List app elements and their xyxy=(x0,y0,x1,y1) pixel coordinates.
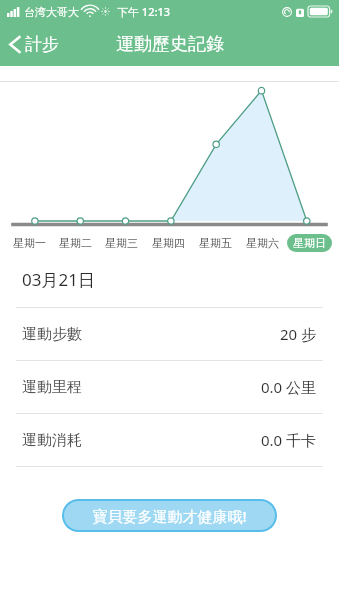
button[interactable]: 星期二 xyxy=(52,232,98,254)
staticText: 運動步數 xyxy=(22,325,82,344)
staticText: 運動消耗 xyxy=(22,431,82,450)
staticText: 20 步 xyxy=(280,324,317,344)
button[interactable]: 計步 xyxy=(0,22,69,66)
staticText: 台湾大哥大 xyxy=(24,5,79,19)
button[interactable]: 運動步數 xyxy=(0,308,339,360)
button[interactable]: 星期日 xyxy=(286,232,333,254)
button[interactable]: 星期五 xyxy=(192,232,239,254)
button[interactable]: 星期六 xyxy=(239,232,286,254)
staticText: 0.0 千卡 xyxy=(261,430,317,450)
staticText: 星期六 xyxy=(246,236,279,250)
staticText: 03月21日 xyxy=(22,268,95,291)
button[interactable]: 星期一 xyxy=(6,232,52,254)
staticText: 寶貝要多運動才健康哦! xyxy=(92,506,247,526)
staticText: 星期日 xyxy=(293,236,326,250)
staticText: 下午 12:13 xyxy=(117,4,171,19)
staticText: 星期一 xyxy=(13,236,46,250)
button[interactable]: 星期三 xyxy=(98,232,145,254)
staticText: 星期五 xyxy=(199,236,232,250)
staticText: 運動歷史記錄 xyxy=(116,33,224,56)
staticText: 星期四 xyxy=(152,236,185,250)
staticText: 星期二 xyxy=(59,236,92,250)
button[interactable]: 運動里程 xyxy=(0,361,339,413)
button[interactable]: 星期四 xyxy=(145,232,192,254)
staticText: 運動里程 xyxy=(22,378,82,397)
button[interactable]: 寶貝要多運動才健康哦! xyxy=(62,499,277,532)
staticText: 計步 xyxy=(25,34,59,55)
button[interactable]: 運動消耗 xyxy=(0,414,339,466)
staticText: 星期三 xyxy=(105,236,138,250)
staticText: 0.0 公里 xyxy=(261,377,317,397)
